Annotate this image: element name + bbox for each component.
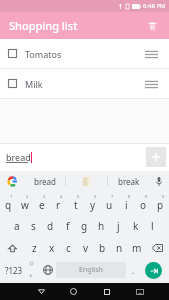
- staticText: Shopping list: [9, 18, 78, 33]
- button[interactable]: f: [59, 215, 76, 237]
- staticText: e: [39, 198, 45, 212]
- button[interactable]: Change language: [39, 259, 56, 281]
- button[interactable]: c: [60, 237, 77, 259]
- staticText: 5: [77, 194, 80, 199]
- button[interactable]: m: [128, 237, 145, 259]
- button[interactable]: Reorder: [141, 74, 161, 94]
- staticText: o: [140, 198, 147, 212]
- button[interactable]: 2: [16, 193, 33, 215]
- button[interactable]: s: [25, 215, 42, 237]
- button[interactable]: l: [144, 215, 161, 237]
- button[interactable]: ?123: [3, 259, 24, 281]
- staticText: .: [132, 265, 135, 276]
- button[interactable]: 6: [84, 193, 101, 215]
- button[interactable]: h: [93, 215, 110, 237]
- staticText: k: [133, 219, 139, 233]
- button[interactable]: Enter: [145, 262, 162, 279]
- button[interactable]: 9: [135, 193, 152, 215]
- staticText: 3: [43, 194, 46, 199]
- button[interactable]: 3: [33, 193, 50, 215]
- button[interactable]: break: [108, 171, 149, 191]
- button[interactable]: English: [56, 262, 126, 278]
- staticText: t: [74, 198, 78, 212]
- staticText: v: [83, 241, 89, 255]
- button[interactable]: x: [43, 237, 60, 259]
- staticText: w: [21, 198, 29, 212]
- button[interactable]: 5: [67, 193, 84, 215]
- button[interactable]: Shift: [0, 237, 25, 259]
- staticText: c: [66, 241, 71, 255]
- button[interactable]: Tomatos: [0, 39, 169, 68]
- button[interactable]: 4: [50, 193, 67, 215]
- staticText: 0: [162, 194, 165, 199]
- button[interactable]: 7: [101, 193, 118, 215]
- button[interactable]: n: [111, 237, 128, 259]
- staticText: f: [66, 219, 70, 233]
- staticText: p: [157, 198, 164, 212]
- staticText: ,: [30, 267, 33, 278]
- button[interactable]: Period: [126, 259, 141, 281]
- staticText: 4: [60, 194, 63, 199]
- staticText: Tomatos: [25, 48, 62, 60]
- staticText: Milk: [25, 78, 43, 90]
- staticText: q: [5, 198, 12, 212]
- button[interactable]: Home: [57, 283, 90, 300]
- button[interactable]: g: [76, 215, 93, 237]
- staticText: b: [99, 241, 106, 255]
- staticText: g: [81, 219, 88, 233]
- staticText: y: [90, 198, 96, 212]
- staticText: l: [151, 219, 154, 233]
- button[interactable]: Delete: [143, 17, 161, 35]
- staticText: m: [132, 241, 142, 255]
- button[interactable]: Reorder: [141, 44, 161, 64]
- staticText: a: [14, 219, 20, 233]
- button[interactable]: v: [77, 237, 94, 259]
- staticText: bread: [34, 176, 56, 187]
- button[interactable]: Clipboard: [66, 171, 107, 191]
- button[interactable]: Back: [25, 283, 57, 300]
- staticText: n: [116, 241, 123, 255]
- button[interactable]: j: [110, 215, 127, 237]
- staticText: 8: [128, 194, 131, 199]
- staticText: x: [49, 241, 55, 255]
- staticText: i: [125, 198, 128, 212]
- staticText: 1: [10, 194, 13, 199]
- staticText: 9: [145, 194, 148, 199]
- staticText: h: [98, 219, 105, 233]
- button[interactable]: 1: [0, 193, 16, 215]
- staticText: 7: [111, 194, 114, 199]
- button[interactable]: z: [25, 237, 43, 259]
- button[interactable]: Comma: [24, 259, 39, 281]
- staticText: j: [117, 219, 120, 233]
- staticText: u: [106, 198, 113, 212]
- button[interactable]: k: [127, 215, 144, 237]
- staticText: r: [56, 198, 61, 212]
- button[interactable]: Recents: [90, 283, 123, 300]
- button[interactable]: b: [94, 237, 111, 259]
- button[interactable]: Google: [0, 171, 24, 191]
- staticText: break: [118, 176, 140, 187]
- staticText: 2: [26, 194, 29, 199]
- staticText: English: [79, 265, 103, 275]
- button[interactable]: Hide keyboard: [123, 283, 156, 300]
- button[interactable]: Voice input: [149, 171, 169, 191]
- staticText: 6:48 PM: [143, 2, 166, 10]
- button[interactable]: Add item: [146, 147, 166, 167]
- button[interactable]: bread: [24, 171, 65, 191]
- button[interactable]: 0: [152, 193, 169, 215]
- staticText: 6: [94, 194, 97, 199]
- staticText: s: [31, 219, 36, 233]
- staticText: z: [32, 241, 37, 255]
- button[interactable]: Milk: [0, 69, 169, 98]
- button[interactable]: a: [8, 215, 25, 237]
- button[interactable]: 8: [118, 193, 135, 215]
- staticText: bread: [6, 151, 31, 163]
- button[interactable]: d: [42, 215, 59, 237]
- staticText: ?123: [5, 265, 23, 276]
- staticText: d: [47, 219, 54, 233]
- button[interactable]: Backspace: [145, 237, 169, 259]
